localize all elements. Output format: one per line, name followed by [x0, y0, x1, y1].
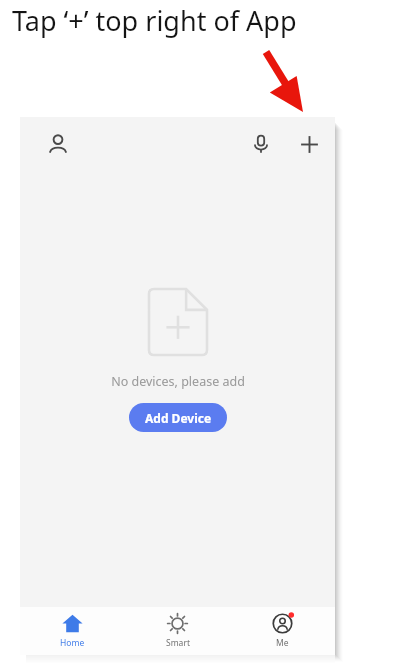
button[interactable]: Home	[20, 609, 125, 653]
staticText: Tap ‘+’ top right of App	[12, 2, 297, 39]
button[interactable]: Add	[291, 126, 327, 162]
staticText: No devices, please add	[111, 373, 245, 390]
button[interactable]: Profile	[40, 126, 76, 162]
staticText: Me	[276, 637, 289, 649]
staticText: Smart	[166, 637, 190, 649]
staticText: Home	[60, 637, 85, 649]
button[interactable]: Add Device	[129, 403, 227, 432]
staticText: Add Device	[145, 410, 212, 426]
button[interactable]: Me	[230, 609, 335, 653]
button[interactable]: Voice	[243, 126, 279, 162]
button[interactable]: Smart	[125, 609, 230, 653]
